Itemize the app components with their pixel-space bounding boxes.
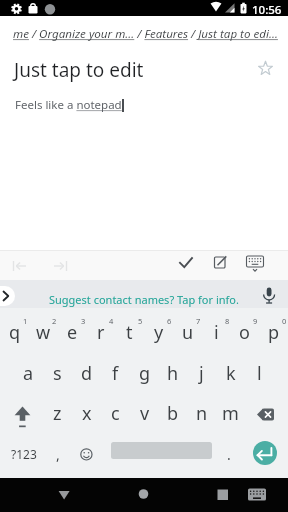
staticText: g <box>139 361 151 386</box>
staticText: k <box>226 361 236 386</box>
staticText: n <box>196 401 208 426</box>
staticText: . <box>227 445 231 464</box>
button[interactable]: x <box>72 393 101 433</box>
staticText: 0 <box>282 316 287 326</box>
staticText: , <box>56 445 60 464</box>
button[interactable] <box>209 251 233 275</box>
staticText: 3 <box>81 316 86 326</box>
staticText: 5 <box>138 316 143 326</box>
staticText: a <box>23 361 34 386</box>
button[interactable] <box>240 478 280 512</box>
staticText: o <box>239 320 250 345</box>
staticText: d <box>81 361 93 386</box>
button[interactable]: u <box>173 312 202 352</box>
button[interactable]: v <box>130 393 159 433</box>
staticText: 2 <box>52 316 57 326</box>
staticText: 6 <box>167 316 172 326</box>
button[interactable]: q <box>0 312 29 352</box>
button[interactable] <box>257 282 281 306</box>
staticText: 9 <box>253 316 258 326</box>
button[interactable]: j <box>187 353 216 393</box>
staticText: w <box>36 320 51 345</box>
button[interactable]: g <box>130 353 159 393</box>
button[interactable] <box>8 398 37 430</box>
button[interactable]: Just tap to edit <box>14 57 144 83</box>
button[interactable] <box>252 55 279 82</box>
button[interactable]: me / Organize your m… / Features / Just … <box>13 26 278 42</box>
button[interactable]: n <box>187 393 216 433</box>
button[interactable]: w <box>29 312 58 352</box>
button[interactable] <box>46 254 70 278</box>
staticText: p <box>268 320 280 345</box>
button[interactable]: l <box>245 353 274 393</box>
button[interactable]: p <box>259 312 288 352</box>
staticText: v <box>140 401 150 426</box>
button[interactable]: a <box>14 353 43 393</box>
staticText: c <box>111 401 120 426</box>
staticText: l <box>257 361 262 386</box>
button[interactable]: Suggest contact names? Tap for info. <box>49 292 239 307</box>
staticText: 4 <box>109 316 114 326</box>
button[interactable]: , <box>43 434 72 474</box>
button[interactable] <box>202 478 242 512</box>
button[interactable]: . <box>214 434 243 474</box>
button[interactable] <box>250 398 279 427</box>
button[interactable] <box>0 308 288 478</box>
button[interactable]: b <box>158 393 187 433</box>
button[interactable]: i <box>202 312 231 352</box>
button[interactable]: Feels like a notepad <box>15 97 124 113</box>
button[interactable]: z <box>43 393 72 433</box>
staticText: 8 <box>225 316 230 326</box>
staticText: t <box>126 320 133 345</box>
button[interactable] <box>243 251 267 275</box>
button[interactable]: k <box>216 353 245 393</box>
staticText: h <box>167 361 179 386</box>
button[interactable] <box>10 254 34 278</box>
staticText: j <box>199 361 204 386</box>
button[interactable]: y <box>144 312 173 352</box>
button[interactable]: s <box>43 353 72 393</box>
button[interactable] <box>72 434 101 474</box>
button[interactable]: o <box>230 312 259 352</box>
button[interactable]: c <box>101 393 130 433</box>
staticText: m <box>222 401 239 426</box>
button[interactable]: d <box>72 353 101 393</box>
button[interactable] <box>174 251 198 275</box>
staticText: 10:56 <box>252 2 282 18</box>
button[interactable]: r <box>86 312 115 352</box>
staticText: r <box>97 320 105 345</box>
staticText: ?123 <box>11 446 37 462</box>
button[interactable]: e <box>58 312 87 352</box>
staticText: me / Organize your m… / Features / Just … <box>13 26 278 42</box>
button[interactable] <box>124 478 164 512</box>
staticText: b <box>167 401 179 426</box>
button[interactable]: t <box>115 312 144 352</box>
staticText: u <box>182 320 194 345</box>
staticText: Feels like a notepad <box>15 97 122 113</box>
staticText: Just tap to edit <box>14 57 144 83</box>
button[interactable] <box>44 478 84 512</box>
staticText: z <box>53 401 62 426</box>
staticText: 7 <box>196 316 201 326</box>
button[interactable] <box>0 286 15 306</box>
button[interactable]: m <box>216 393 245 433</box>
button[interactable] <box>253 441 277 465</box>
staticText: x <box>82 401 92 426</box>
staticText: q <box>9 320 21 345</box>
button[interactable]: ?123 <box>2 434 45 474</box>
staticText: s <box>53 361 62 386</box>
staticText: e <box>67 320 78 345</box>
staticText: 1 <box>23 316 28 326</box>
staticText: f <box>112 361 119 386</box>
button[interactable]: f <box>101 353 130 393</box>
button[interactable]: h <box>158 353 187 393</box>
staticText: y <box>154 320 164 345</box>
staticText: i <box>214 320 219 345</box>
